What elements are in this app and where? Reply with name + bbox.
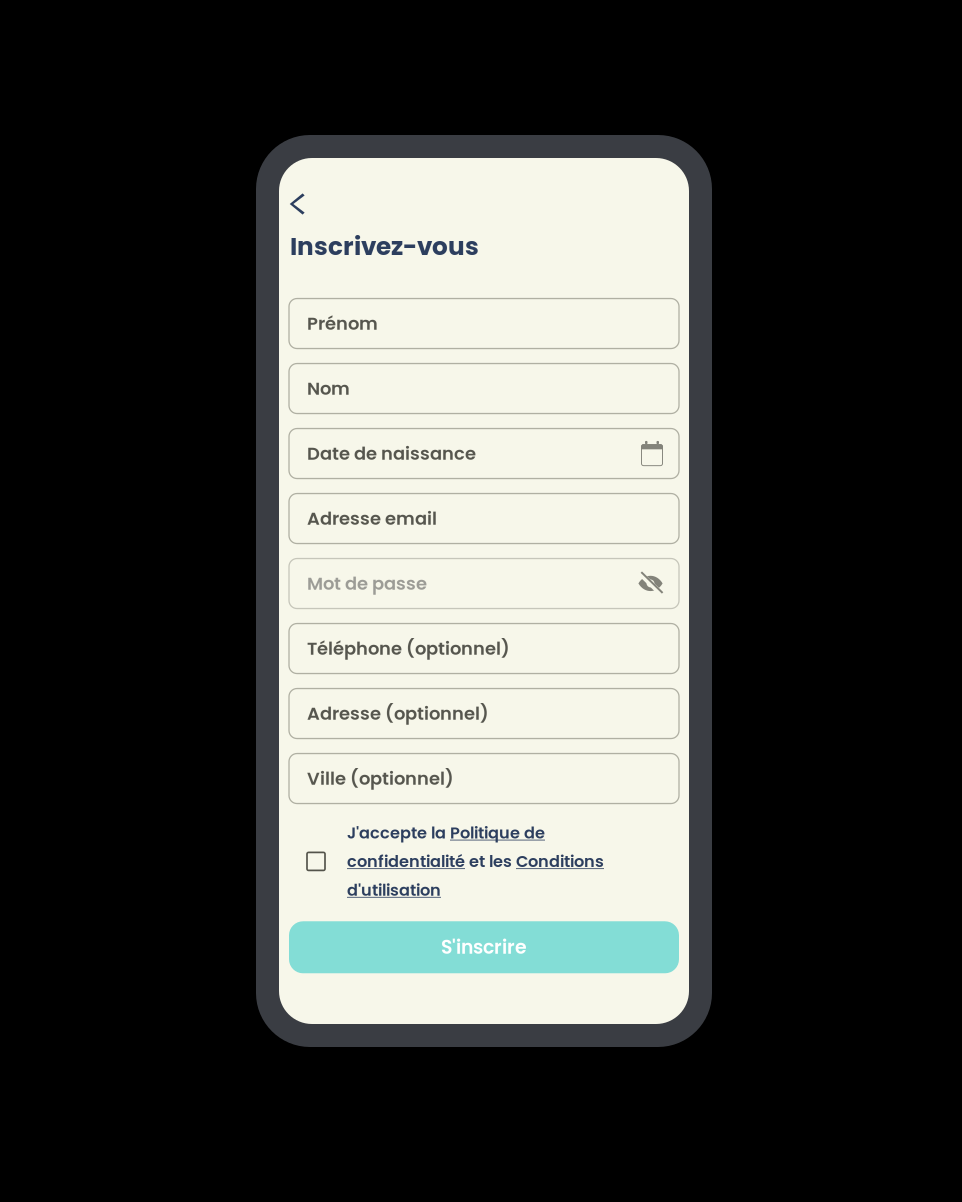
staticText: Date de naissance (307, 441, 476, 466)
button[interactable]: Nom (289, 363, 679, 413)
staticText: S'inscrire (441, 934, 527, 960)
button[interactable]: Back (279, 190, 314, 218)
button[interactable]: Téléphone (optionnel) (289, 623, 679, 673)
staticText: Mot de passe (307, 571, 427, 596)
staticText: Inscrivez-vous (290, 229, 479, 263)
button[interactable]: Date de naissance (289, 428, 679, 478)
staticText: Téléphone (optionnel) (307, 636, 510, 661)
button[interactable]: Prénom (289, 298, 679, 348)
staticText: J'accepte la Politique de confidentialit… (347, 821, 604, 901)
button[interactable]: S'inscrire (279, 921, 679, 973)
staticText: Prénom (307, 311, 378, 336)
staticText: Ville (optionnel) (307, 766, 454, 791)
button[interactable]: Accept the privacy policy and terms of u… (302, 846, 330, 876)
staticText: Adresse (optionnel) (307, 701, 489, 726)
staticText: Nom (307, 376, 350, 401)
button[interactable]: Mot de passe (289, 558, 679, 608)
button[interactable]: Adresse email (289, 493, 679, 543)
button[interactable]: Adresse (optionnel) (289, 688, 679, 738)
staticText: Adresse email (307, 506, 437, 531)
button[interactable]: Ville (optionnel) (289, 753, 679, 803)
